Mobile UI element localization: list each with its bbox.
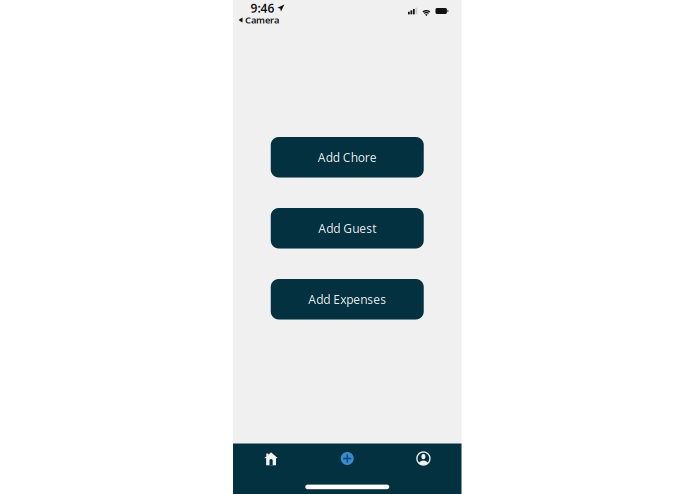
staticText: Add Expenses <box>308 291 386 307</box>
button[interactable]: Add Chore <box>271 137 424 177</box>
button[interactable]: Profile <box>385 447 461 469</box>
button[interactable]: Add Expenses <box>271 279 424 319</box>
button[interactable]: Add <box>309 447 385 469</box>
button[interactable]: Back to Camera <box>233 15 461 25</box>
button[interactable]: Add Guest <box>271 208 424 248</box>
staticText: Camera <box>245 14 279 26</box>
staticText: 9:46 <box>250 0 274 16</box>
button[interactable]: Home <box>233 447 309 469</box>
staticText: Add Chore <box>318 149 377 165</box>
staticText: Add Guest <box>318 220 376 236</box>
